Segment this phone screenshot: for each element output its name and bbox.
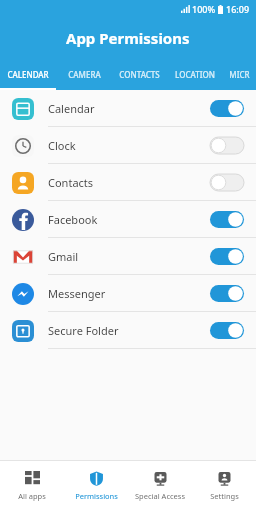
staticText: All apps (18, 491, 46, 501)
button[interactable]: MICR (222, 58, 256, 90)
other: All apps (25, 471, 40, 486)
staticText: 100% (192, 3, 216, 15)
button[interactable]: Permissions (64, 460, 128, 512)
button[interactable]: Messenger (0, 275, 256, 312)
button[interactable] (210, 285, 244, 302)
button[interactable] (210, 211, 244, 228)
staticText: Gmail (48, 249, 79, 264)
button[interactable] (210, 322, 244, 339)
button[interactable]: CONTACTS (112, 58, 167, 90)
other: Settings (217, 471, 232, 486)
staticText: App Permissions (66, 28, 190, 48)
staticText: Facebook (48, 212, 98, 227)
staticText: Contacts (48, 175, 94, 190)
button[interactable]: Calendar (0, 90, 256, 127)
button[interactable]: Gmail (0, 238, 256, 275)
button[interactable]: Facebook (0, 201, 256, 238)
staticText: Settings (210, 491, 239, 501)
staticText: MICR (229, 69, 250, 80)
button[interactable]: Secure Folder (0, 312, 256, 349)
staticText: Special Access (135, 491, 185, 501)
staticText: CONTACTS (119, 69, 160, 80)
button[interactable] (210, 248, 244, 265)
button[interactable]: CALENDAR (0, 58, 56, 90)
button[interactable] (210, 137, 244, 154)
staticText: Messenger (48, 286, 106, 301)
button[interactable]: CAMERA (56, 58, 112, 90)
staticText: Clock (48, 138, 76, 153)
other: Special Access (153, 471, 168, 486)
staticText: Secure Folder (48, 323, 119, 338)
button[interactable]: All apps (0, 460, 64, 512)
staticText: LOCATION (175, 69, 215, 80)
staticText: CALENDAR (7, 69, 49, 80)
button[interactable]: Special Access (128, 460, 192, 512)
button[interactable]: LOCATION (167, 58, 222, 90)
staticText: 16:09 (226, 3, 250, 15)
button[interactable] (210, 174, 244, 191)
staticText: Permissions (75, 491, 118, 501)
staticText: CAMERA (68, 69, 101, 80)
other: Permissions (89, 471, 104, 486)
button[interactable]: Settings (192, 460, 256, 512)
button[interactable]: Contacts (0, 164, 256, 201)
button[interactable] (210, 100, 244, 117)
button[interactable]: Clock (0, 127, 256, 164)
staticText: Calendar (48, 101, 95, 116)
